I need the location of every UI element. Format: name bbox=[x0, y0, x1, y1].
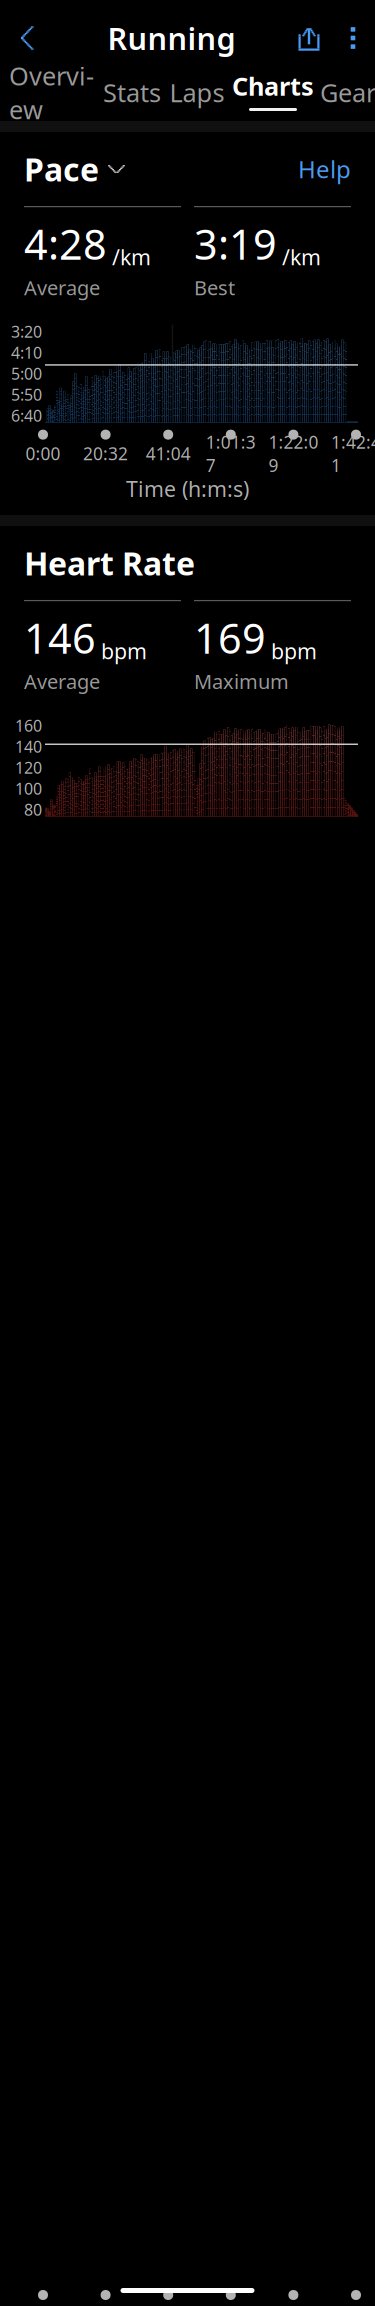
staticText: Overview bbox=[9, 59, 94, 126]
staticText: 169 bbox=[194, 610, 266, 665]
staticText: Average bbox=[24, 274, 100, 301]
staticText: Laps bbox=[169, 76, 224, 109]
button[interactable]: Laps bbox=[165, 70, 229, 114]
button[interactable]: More options bbox=[331, 12, 375, 64]
staticText: Gear bbox=[320, 76, 375, 109]
button[interactable]: Stats bbox=[99, 70, 165, 114]
staticText: 41:04 bbox=[146, 442, 191, 465]
button[interactable]: Charts bbox=[229, 64, 317, 121]
staticText: 120 bbox=[15, 757, 42, 778]
staticText: 0:00 bbox=[25, 442, 60, 465]
staticText: 20:32 bbox=[83, 442, 128, 465]
staticText: 5:50 bbox=[11, 384, 42, 405]
staticText: Best bbox=[194, 274, 235, 301]
staticText: /km bbox=[112, 243, 151, 271]
button[interactable]: Overview bbox=[4, 70, 99, 114]
button[interactable]: Gear bbox=[317, 70, 375, 114]
staticText: 80 bbox=[24, 799, 42, 820]
button[interactable]: Help bbox=[298, 148, 351, 190]
button[interactable]: Back bbox=[0, 12, 56, 64]
staticText: 140 bbox=[15, 736, 42, 757]
staticText: 4:10 bbox=[11, 342, 42, 363]
staticText: 1:42:41 bbox=[331, 431, 375, 477]
staticText: bpm bbox=[101, 637, 147, 665]
staticText: 100 bbox=[15, 778, 42, 799]
staticText: Maximum bbox=[194, 668, 289, 695]
staticText: Heart Rate bbox=[24, 542, 195, 584]
staticText: Average bbox=[24, 668, 100, 695]
staticText: 1:01:37 bbox=[206, 431, 256, 477]
button[interactable]: Pace bbox=[24, 148, 126, 190]
staticText: 1:22:09 bbox=[268, 431, 318, 477]
staticText: Help bbox=[298, 153, 351, 185]
button[interactable]: Share bbox=[287, 12, 331, 64]
staticText: bpm bbox=[271, 637, 317, 665]
staticText: Time (h:m:s) bbox=[126, 475, 249, 503]
staticText: 3:20 bbox=[11, 321, 42, 342]
staticText: 160 bbox=[15, 715, 42, 736]
staticText: /km bbox=[282, 243, 321, 271]
staticText: 5:00 bbox=[11, 363, 42, 384]
staticText: 6:40 bbox=[11, 405, 42, 426]
staticText: 4:28 bbox=[24, 216, 107, 271]
staticText: 3:19 bbox=[194, 216, 277, 271]
staticText: Pace bbox=[24, 148, 99, 190]
staticText: Running bbox=[107, 18, 235, 58]
staticText: Charts bbox=[232, 69, 314, 103]
staticText: Stats bbox=[103, 76, 161, 109]
staticText: 146 bbox=[24, 610, 96, 665]
